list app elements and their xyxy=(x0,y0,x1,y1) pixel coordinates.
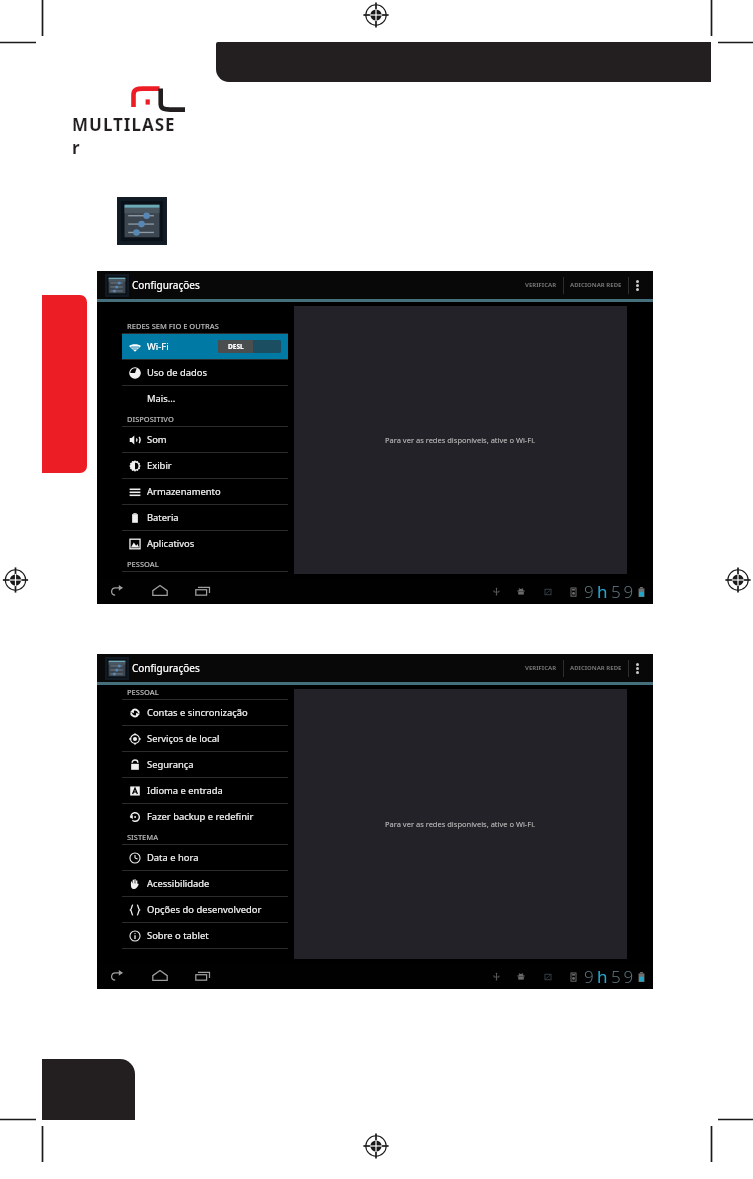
staticText: DESL xyxy=(228,342,244,351)
staticText: REDES SEM FIO E OUTRAS xyxy=(127,321,219,331)
staticText: h xyxy=(597,965,611,988)
staticText: Bateria xyxy=(147,511,179,524)
staticText: Contas e sincronização xyxy=(147,706,248,719)
button[interactable]: Home xyxy=(151,583,169,599)
staticText: Serviços de local xyxy=(147,732,220,745)
button[interactable]: Aplicativos xyxy=(122,531,288,556)
button[interactable]: Opções do desenvolvedor xyxy=(122,897,288,922)
button[interactable]: Recents xyxy=(194,968,212,984)
button[interactable]: VERIFICAR xyxy=(519,271,563,299)
staticText: Segurança xyxy=(147,758,194,771)
button[interactable]: More options xyxy=(629,654,646,682)
staticText: Configurações xyxy=(132,278,200,292)
staticText: 9 xyxy=(584,965,597,988)
staticText: Wi-Fi xyxy=(147,340,169,353)
button[interactable]: ADICIONAR REDE xyxy=(564,654,628,682)
staticText: Fazer backup e redefinir xyxy=(147,810,254,823)
button[interactable]: Idioma e entrada xyxy=(122,778,288,803)
button[interactable]: Acessibilidade xyxy=(122,871,288,896)
staticText: 59 xyxy=(611,580,637,603)
staticText: Para ver as redes disponíveis, ative o W… xyxy=(385,435,536,445)
button[interactable]: DESL xyxy=(218,340,281,353)
button[interactable]: Exibir xyxy=(122,453,288,478)
staticText: Acessibilidade xyxy=(147,877,210,890)
staticText: 59 xyxy=(611,965,637,988)
button[interactable]: Back xyxy=(108,583,126,599)
staticText: Configurações xyxy=(132,661,200,675)
staticText: Armazenamento xyxy=(147,485,221,498)
button[interactable]: VERIFICAR xyxy=(519,654,563,682)
button[interactable]: Uso de dados xyxy=(122,360,288,385)
staticText: ADICIONAR REDE xyxy=(570,664,622,672)
button[interactable]: Contas e sincronização xyxy=(122,700,288,725)
staticText: Para ver as redes disponíveis, ative o W… xyxy=(385,819,536,829)
staticText: Uso de dados xyxy=(147,366,207,379)
button[interactable]: Segurança xyxy=(122,752,288,777)
staticText: SISTEMA xyxy=(127,832,159,842)
button[interactable]: Data e hora xyxy=(122,845,288,870)
button[interactable]: ADICIONAR REDE xyxy=(564,271,628,299)
staticText: Data e hora xyxy=(147,851,199,864)
staticText: Mais... xyxy=(147,392,176,405)
staticText: Som xyxy=(147,433,167,446)
staticText: MULTILASEr xyxy=(72,113,184,159)
staticText: DISPOSITIVO xyxy=(127,414,174,424)
staticText: Idioma e entrada xyxy=(147,784,223,797)
staticText: Aplicativos xyxy=(147,537,195,550)
button[interactable]: Armazenamento xyxy=(122,479,288,504)
staticText: VERIFICAR xyxy=(525,281,557,289)
button[interactable]: Bateria xyxy=(122,505,288,530)
staticText: Exibir xyxy=(147,459,172,472)
button[interactable]: Sobre o tablet xyxy=(122,923,288,948)
button[interactable]: Recents xyxy=(194,583,212,599)
staticText: h xyxy=(597,580,611,603)
button[interactable]: Home xyxy=(151,968,169,984)
button[interactable]: Som xyxy=(122,427,288,452)
staticText: PESSOAL xyxy=(127,687,159,697)
staticText: VERIFICAR xyxy=(525,664,557,672)
button[interactable]: Back xyxy=(108,968,126,984)
button[interactable]: Serviços de local xyxy=(122,726,288,751)
staticText: Sobre o tablet xyxy=(147,929,209,942)
button[interactable]: Wi-Fi xyxy=(122,334,288,359)
staticText: Opções do desenvolvedor xyxy=(147,903,262,916)
staticText: ADICIONAR REDE xyxy=(570,281,622,289)
staticText: PESSOAL xyxy=(127,559,159,569)
button[interactable]: Mais... xyxy=(122,386,288,411)
staticText: 9 xyxy=(584,580,597,603)
button[interactable]: More options xyxy=(629,271,646,299)
button[interactable]: Fazer backup e redefinir xyxy=(122,804,288,829)
